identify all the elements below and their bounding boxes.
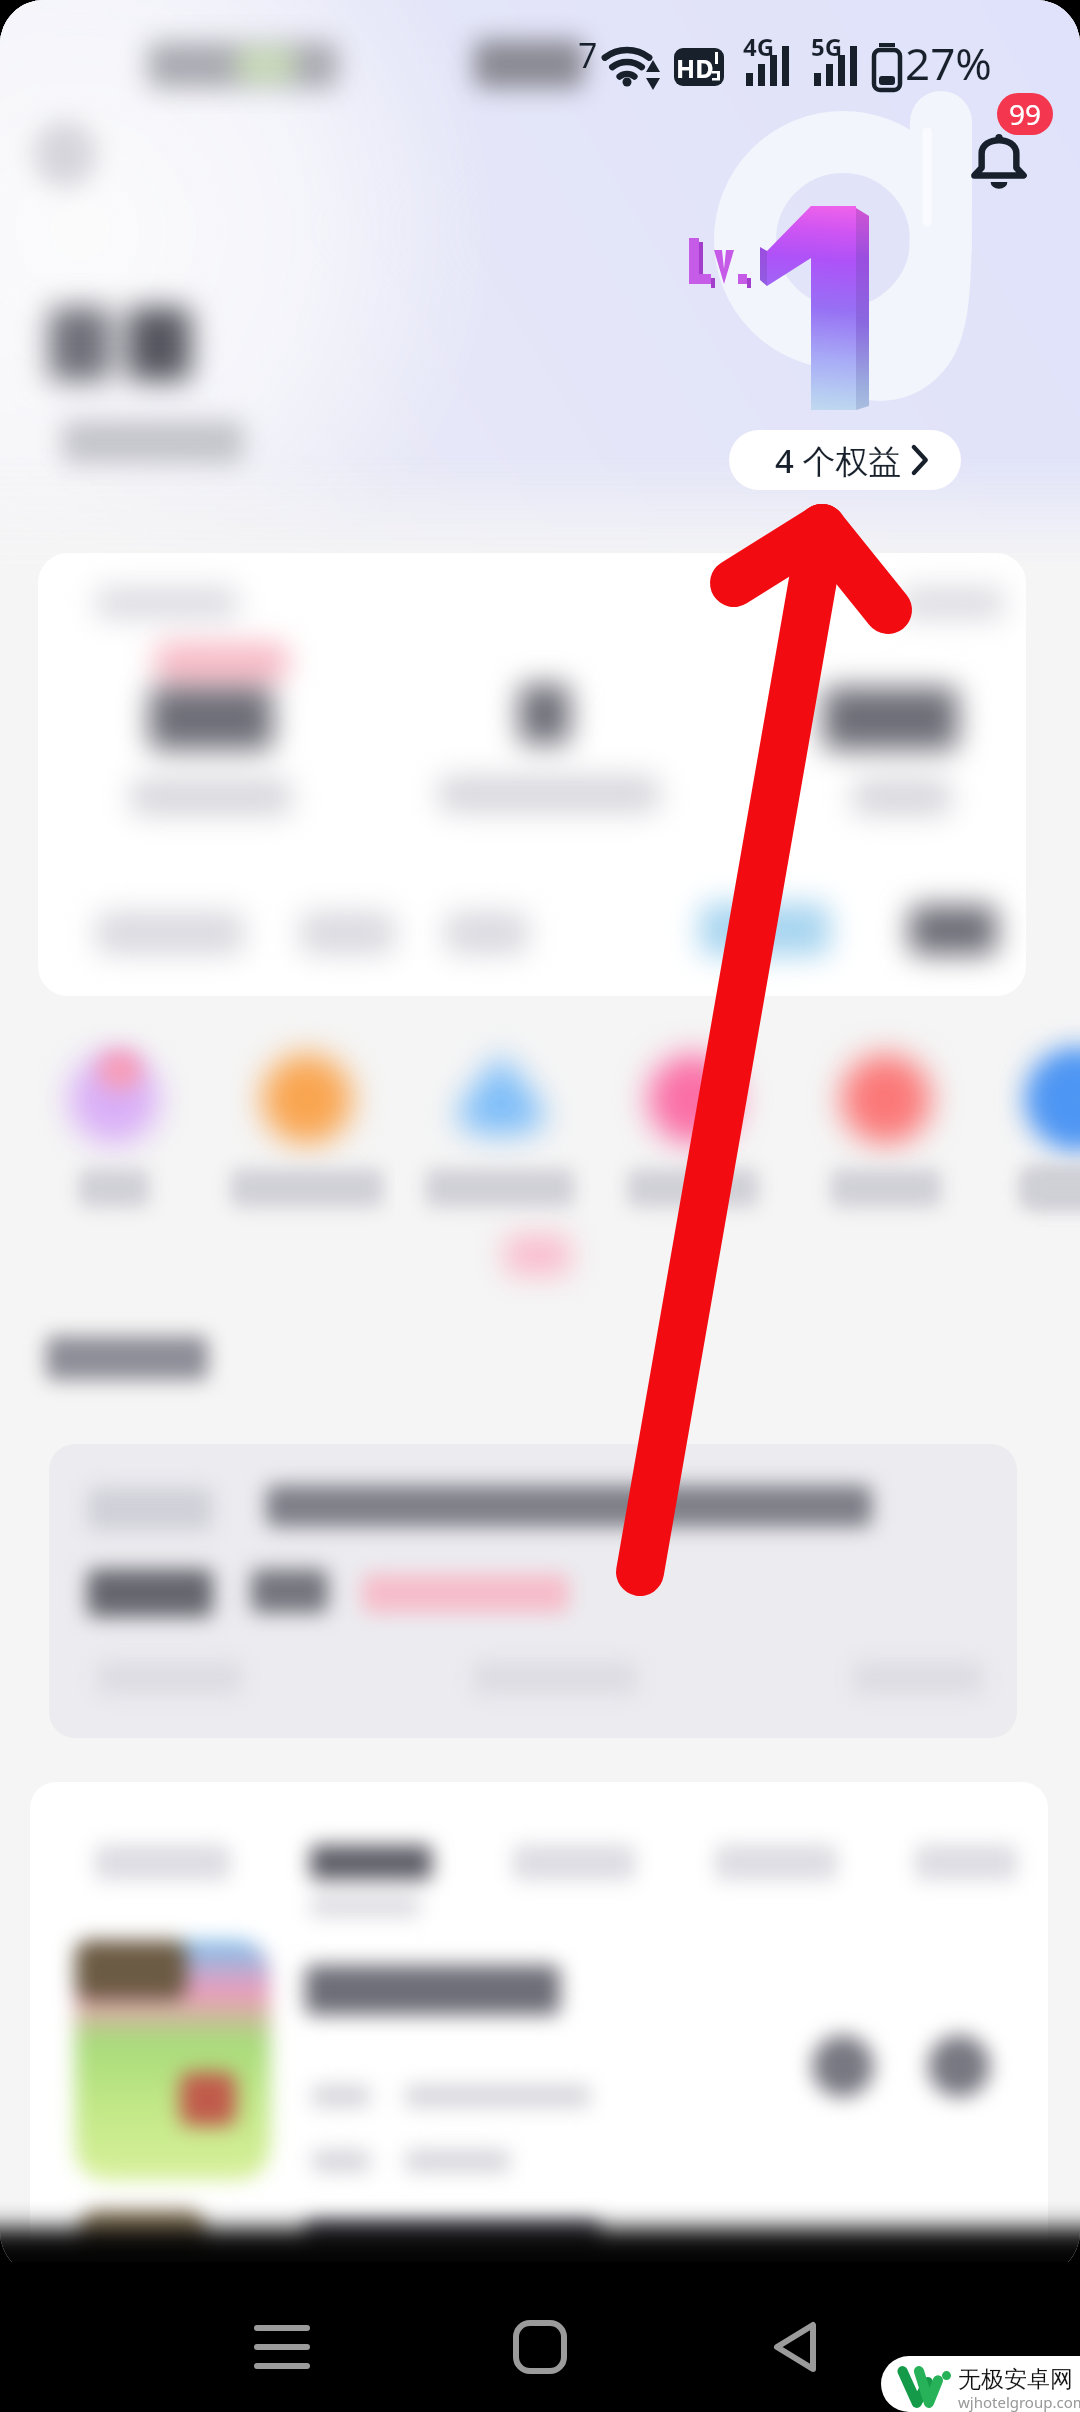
button[interactable] [30, 1782, 1048, 2276]
staticText: wjhotelgroup.com [958, 2392, 1080, 2412]
staticText: 4 个权益 [775, 438, 902, 483]
staticText: 7 [578, 32, 598, 78]
staticText: 无极安卓网 [958, 2365, 1073, 2394]
button[interactable] [408, 1040, 592, 1230]
staticText: 5G [811, 30, 843, 63]
button[interactable] [215, 1040, 399, 1230]
staticText: 99 [1009, 95, 1042, 133]
button[interactable] [49, 1444, 1017, 1738]
button[interactable]: Notifications [965, 90, 1061, 194]
button[interactable] [794, 1040, 978, 1230]
staticText: 4G [743, 30, 775, 63]
button[interactable]: 4 个权益 [729, 430, 961, 490]
button[interactable] [38, 553, 1026, 996]
button[interactable] [22, 1040, 206, 1230]
button[interactable]: Recents [222, 2302, 342, 2392]
staticText: HD [676, 51, 714, 85]
staticText: 27% [905, 33, 992, 93]
button[interactable]: Home [480, 2302, 600, 2392]
button[interactable] [987, 1040, 1080, 1230]
button[interactable]: Back [735, 2302, 855, 2392]
button[interactable] [601, 1040, 785, 1230]
